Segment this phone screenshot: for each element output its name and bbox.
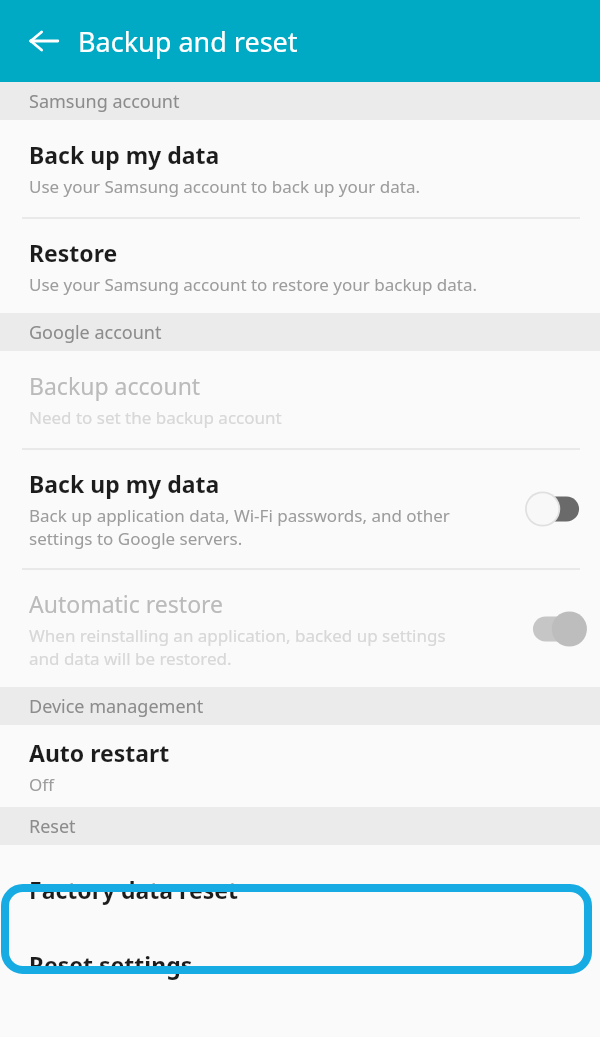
staticText: Automatic restore	[29, 588, 224, 619]
button[interactable]: Backup account	[0, 351, 600, 448]
button[interactable]: Toggle Back up my data	[512, 479, 600, 539]
staticText: Use your Samsung account to back up your…	[29, 175, 420, 198]
staticText: Back up application data, Wi-Fi password…	[29, 504, 450, 527]
staticText: settings to Google servers.	[29, 527, 243, 550]
staticText: Google account	[29, 320, 162, 345]
staticText: Device management	[29, 694, 204, 719]
button[interactable]: Back up my data	[0, 450, 600, 568]
staticText: Samsung account	[29, 89, 180, 114]
button[interactable]: Factory data reset	[0, 845, 600, 933]
staticText: Backup account	[29, 370, 201, 401]
button[interactable]: Auto restart	[0, 725, 600, 807]
staticText: Off	[29, 773, 54, 796]
staticText: and data will be restored.	[29, 647, 232, 670]
staticText: Use your Samsung account to restore your…	[29, 273, 478, 296]
staticText: Reset settings	[29, 949, 193, 980]
staticText: Back up my data	[29, 139, 220, 170]
button[interactable]: Restore	[0, 219, 600, 313]
staticText: Backup and reset	[78, 23, 298, 60]
staticText: Reset	[29, 814, 76, 839]
button[interactable]: Back up my data	[0, 120, 600, 217]
staticText: Need to set the backup account	[29, 406, 282, 429]
button[interactable]: Automatic restore	[0, 570, 600, 687]
button[interactable]: Reset settings	[0, 933, 600, 995]
button[interactable]: Back	[20, 17, 68, 65]
staticText: Auto restart	[29, 737, 170, 768]
staticText: Factory data reset	[29, 874, 238, 905]
staticText: When reinstalling an application, backed…	[29, 624, 446, 647]
staticText: Restore	[29, 237, 118, 268]
staticText: Back up my data	[29, 468, 220, 499]
button[interactable]: Toggle Automatic restore	[512, 599, 600, 659]
